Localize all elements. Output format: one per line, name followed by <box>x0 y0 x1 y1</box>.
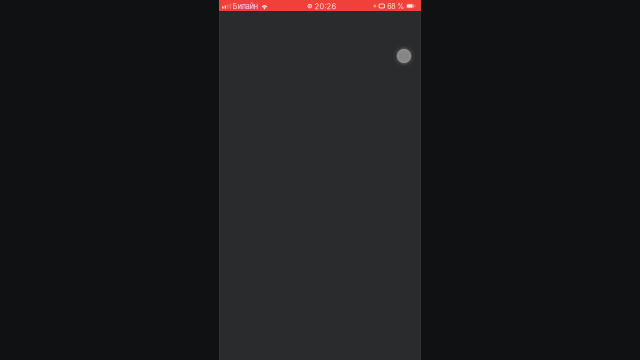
staticText: Билайн <box>233 2 258 11</box>
staticText: 20:26 <box>314 2 336 11</box>
button[interactable]: AssistiveTouch <box>393 45 415 67</box>
button[interactable]: Stop screen recording <box>219 0 421 11</box>
staticText: 68 % <box>387 2 404 11</box>
